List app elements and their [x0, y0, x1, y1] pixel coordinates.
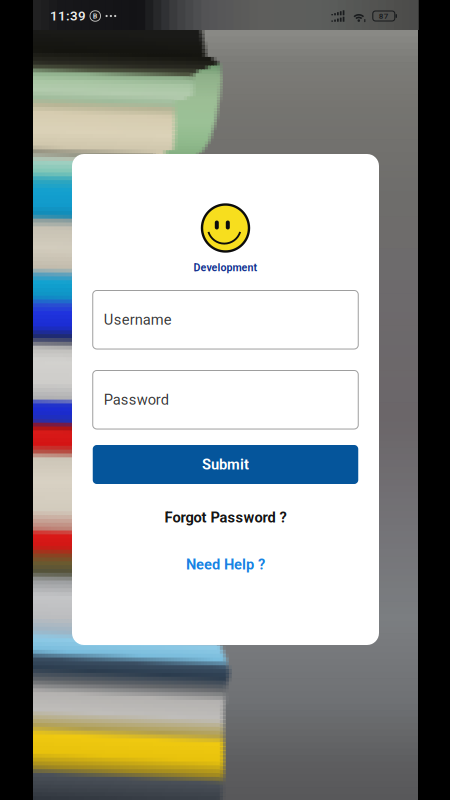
staticText: Forgot Password ?: [164, 509, 286, 526]
button[interactable]: Need Help ?: [155, 548, 295, 580]
staticText: Development: [193, 261, 257, 274]
staticText: 87: [379, 11, 389, 21]
staticText: Submit: [202, 456, 249, 473]
staticText: Username: [104, 311, 172, 328]
staticText: Password: [104, 391, 169, 408]
staticText: Need Help ?: [186, 556, 265, 573]
button[interactable]: Forgot Password ?: [135, 501, 315, 533]
staticText: B: [93, 12, 98, 20]
staticText: 11:39: [50, 8, 86, 24]
button[interactable]: Submit: [93, 445, 358, 484]
